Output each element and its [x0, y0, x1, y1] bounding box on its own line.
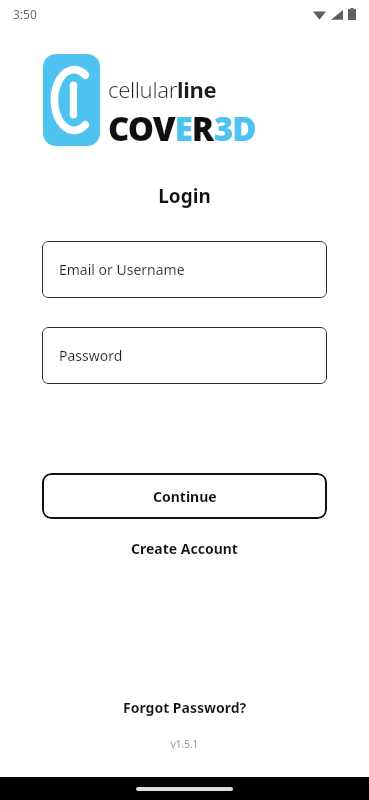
- staticText: COVER: [108, 106, 214, 151]
- button[interactable]: Password: [42, 327, 327, 384]
- staticText: Email or Username: [59, 260, 185, 279]
- staticText: 3D: [214, 106, 256, 151]
- button[interactable]: Forgot Password?: [0, 692, 369, 723]
- staticText: Forgot Password?: [123, 698, 247, 717]
- button[interactable]: Create Account: [0, 531, 369, 566]
- staticText: Login: [0, 183, 369, 209]
- staticText: cellularline: [108, 74, 217, 104]
- button[interactable]: Email or Username: [42, 241, 327, 298]
- staticText: Create Account: [131, 539, 238, 558]
- staticText: Password: [59, 346, 123, 365]
- other: Home: [136, 787, 233, 791]
- button[interactable]: Continue: [42, 473, 327, 519]
- staticText: v1.5.1: [0, 737, 369, 751]
- staticText: 3:50: [13, 6, 37, 22]
- staticText: Continue: [153, 487, 217, 506]
